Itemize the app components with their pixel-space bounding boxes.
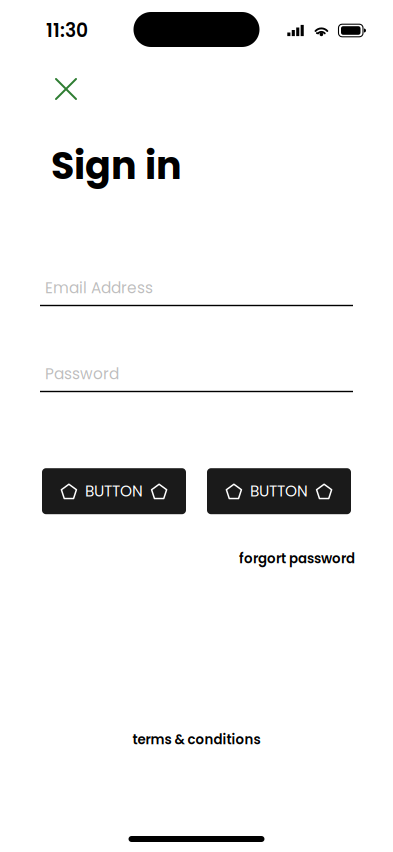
staticText: BUTTON [85, 480, 143, 502]
staticText: Sign in [51, 139, 182, 192]
staticText: forgort password [239, 549, 355, 568]
button[interactable]: BUTTON [42, 468, 186, 514]
button[interactable]: terms & conditions [132, 730, 260, 749]
staticText: BUTTON [250, 480, 308, 502]
button[interactable]: Close [46, 69, 86, 109]
button[interactable]: Email Address [40, 277, 353, 306]
staticText: terms & conditions [132, 730, 260, 749]
button[interactable]: forgort password [239, 549, 355, 568]
staticText: 11:30 [46, 17, 88, 43]
button[interactable]: Password [40, 363, 353, 392]
button[interactable]: BUTTON [207, 468, 351, 514]
staticText: Email Address [45, 277, 153, 299]
staticText: Password [45, 363, 119, 385]
